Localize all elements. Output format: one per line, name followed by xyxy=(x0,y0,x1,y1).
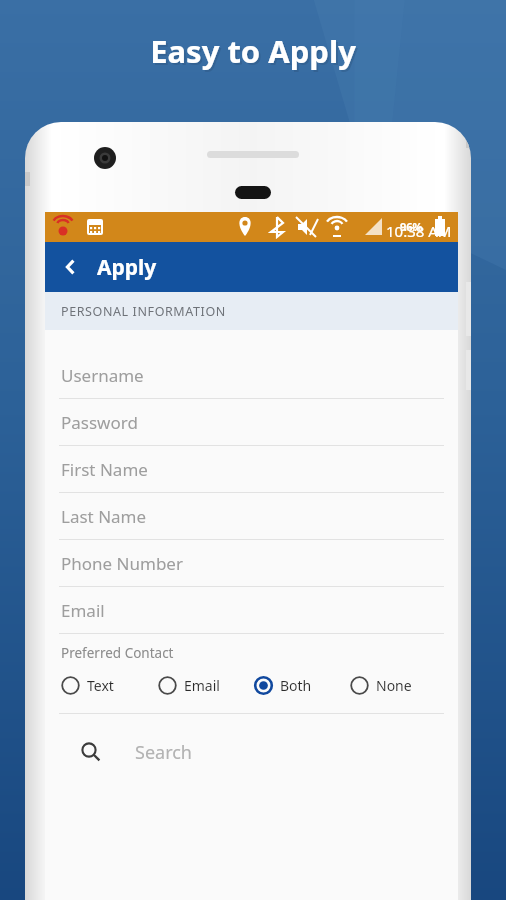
staticText: Apply xyxy=(97,253,157,282)
staticText: Last Name xyxy=(61,505,147,528)
button[interactable]: Back xyxy=(45,242,97,292)
staticText: Email xyxy=(184,676,220,695)
staticText: 10:38 AM xyxy=(386,221,452,241)
staticText: Text xyxy=(87,676,114,695)
staticText: Password xyxy=(61,411,138,434)
other: Search xyxy=(81,742,101,762)
button[interactable]: Username xyxy=(45,352,458,399)
button[interactable]: Text xyxy=(61,672,158,699)
staticText: None xyxy=(376,676,412,695)
staticText: Preferred Contact xyxy=(61,644,174,662)
button[interactable]: Phone Number xyxy=(45,540,458,587)
button[interactable]: Email xyxy=(45,587,458,634)
staticText: Easy to Apply xyxy=(152,32,358,74)
staticText: Easy to Apply xyxy=(150,30,356,72)
staticText: 96% xyxy=(400,219,423,234)
button[interactable]: Search xyxy=(45,714,458,790)
staticText: Email xyxy=(61,599,105,622)
button[interactable]: Last Name xyxy=(45,493,458,540)
staticText: Username xyxy=(61,364,144,387)
button[interactable]: Both xyxy=(254,672,350,699)
button[interactable]: None xyxy=(350,672,446,699)
staticText: PERSONAL INFORMATION xyxy=(61,303,226,320)
staticText: Search xyxy=(135,740,192,765)
staticText: First Name xyxy=(61,458,148,481)
staticText: Both xyxy=(280,676,312,695)
button[interactable]: Password xyxy=(45,399,458,446)
staticText: Phone Number xyxy=(61,552,183,575)
button[interactable]: Email xyxy=(158,672,254,699)
button[interactable]: First Name xyxy=(45,446,458,493)
